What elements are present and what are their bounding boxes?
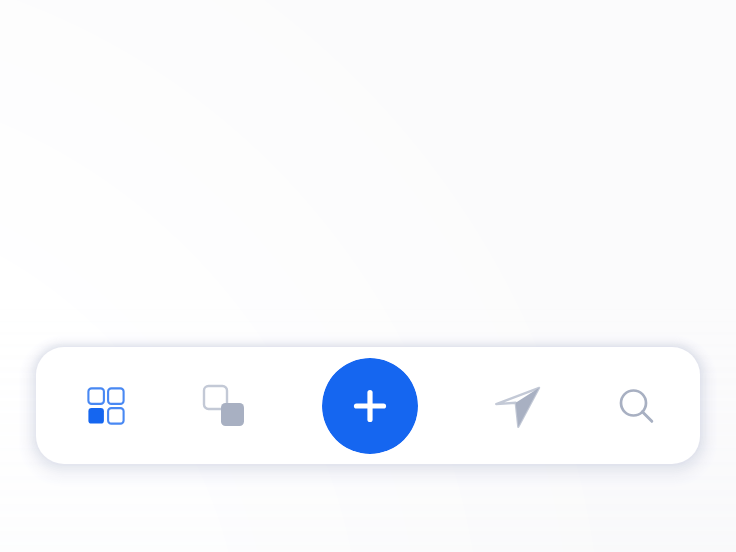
button[interactable]: Search <box>606 376 666 436</box>
button[interactable]: Dashboard <box>76 376 136 436</box>
button[interactable]: Add <box>322 358 418 454</box>
button[interactable]: Copy <box>194 376 254 436</box>
button[interactable]: Send <box>487 376 547 436</box>
